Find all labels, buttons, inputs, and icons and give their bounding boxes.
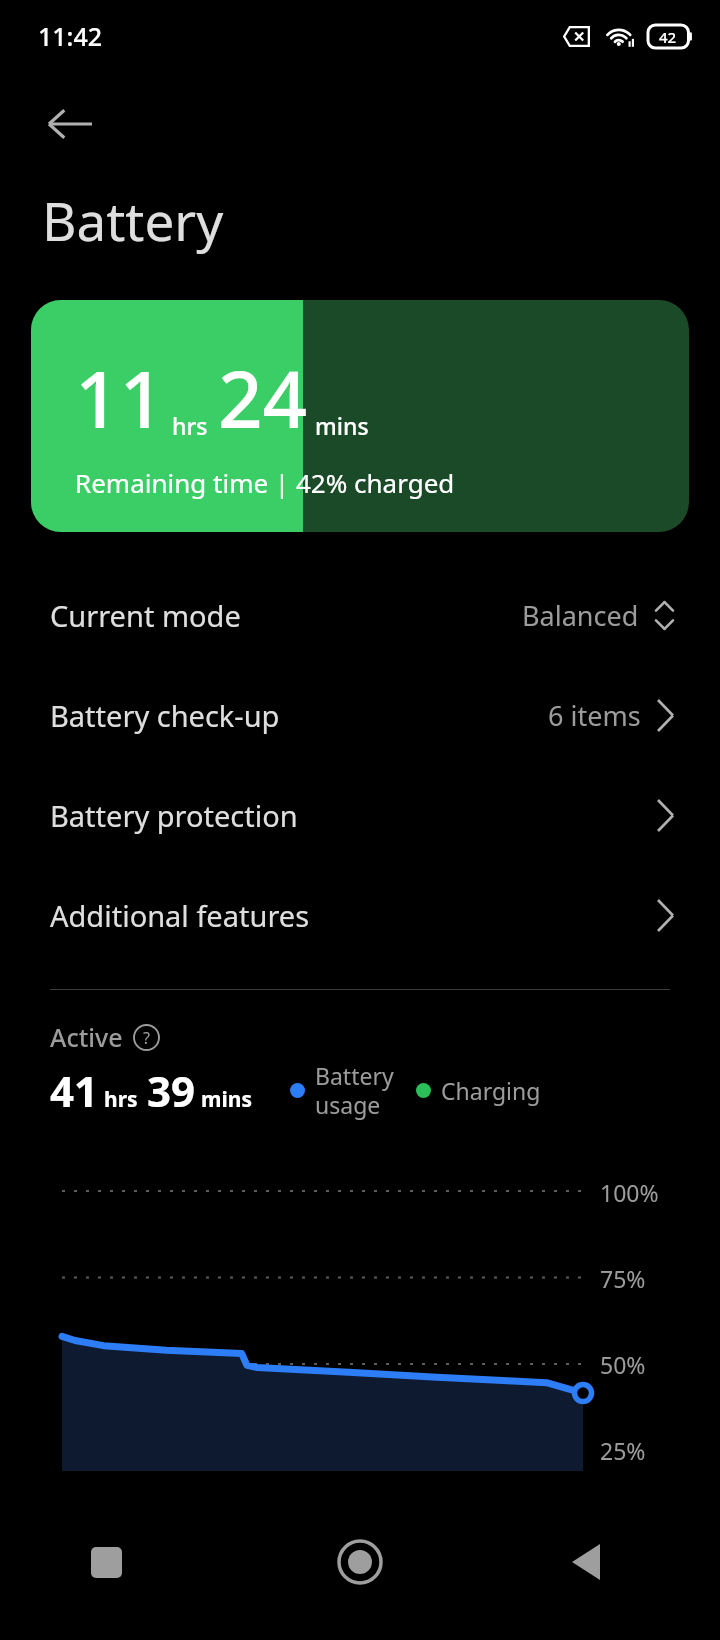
staticText: 75% [600,1263,646,1294]
button[interactable]: Battery protection [0,765,720,865]
staticText: Additional features [50,896,310,935]
staticText: mins [315,410,369,441]
staticText: 50% [600,1349,646,1380]
button[interactable]: Back [480,1520,720,1640]
staticText: Balanced [522,597,639,634]
button[interactable]: Home [240,1520,480,1640]
staticText: Remaining time | 42% charged [75,465,455,500]
staticText: hrs [172,410,208,441]
staticText: ? [143,1027,150,1049]
button[interactable]: Help [133,1024,160,1051]
button[interactable]: Battery check-up [0,665,720,765]
button[interactable]: Additional features [0,865,720,965]
button[interactable]: 11 [31,300,689,532]
staticText: 25% [600,1435,646,1466]
staticText: Battery usage [315,1060,394,1121]
staticText: Current mode [50,596,241,635]
button[interactable]: Recents [0,1520,240,1640]
staticText: 6 items [548,697,641,734]
staticText: Battery [42,184,224,256]
staticText: 42 [659,27,677,47]
staticText: Battery protection [50,796,298,835]
staticText: Battery check-up [50,696,280,735]
staticText: Active [50,1020,123,1054]
button[interactable]: Current mode [0,565,720,665]
staticText: 11 [75,345,165,451]
staticText: 100% [600,1177,659,1208]
staticText: 39 [147,1062,196,1119]
staticText: 41 [50,1062,99,1119]
button[interactable]: Back [32,86,108,162]
staticText: 11:42 [38,19,103,53]
staticText: mins [201,1085,252,1114]
staticText: 24 [218,345,308,451]
staticText: hrs [104,1085,138,1114]
staticText: Charging [441,1075,541,1106]
